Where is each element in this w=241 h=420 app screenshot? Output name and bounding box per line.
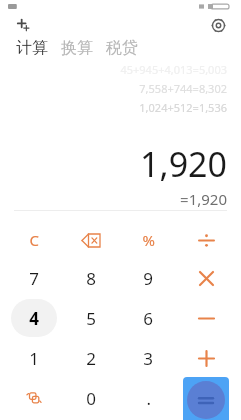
staticText: 5 bbox=[86, 307, 96, 330]
staticText: 计算 bbox=[16, 38, 48, 58]
button[interactable]: Plus bbox=[183, 339, 229, 377]
button[interactable]: 6 bbox=[125, 299, 171, 337]
staticText: 1,920 bbox=[140, 141, 227, 187]
staticText: 9 bbox=[143, 267, 153, 290]
staticText: 7,558+744=8,302 bbox=[139, 81, 227, 96]
button[interactable]: Percent bbox=[125, 221, 171, 259]
staticText: 1,024+512=1,536 bbox=[139, 100, 227, 115]
button[interactable]: 4 bbox=[11, 299, 57, 337]
button[interactable]: Clear bbox=[11, 221, 57, 259]
button[interactable]: Equals bbox=[183, 377, 229, 420]
button[interactable]: Settings bbox=[205, 12, 231, 38]
staticText: 0 bbox=[86, 387, 96, 410]
button[interactable]: . bbox=[125, 379, 171, 417]
staticText: =1,920 bbox=[180, 189, 227, 209]
staticText: 4 bbox=[29, 307, 39, 330]
staticText: 6 bbox=[143, 307, 153, 330]
button[interactable]: Backspace bbox=[68, 221, 114, 259]
staticText: 3 bbox=[143, 347, 153, 370]
staticText: 税贷 bbox=[106, 38, 138, 58]
button[interactable]: 换算 bbox=[59, 36, 95, 60]
button[interactable]: 税贷 bbox=[104, 36, 140, 60]
button[interactable]: 0 bbox=[68, 379, 114, 417]
button[interactable]: 7 bbox=[11, 259, 57, 297]
button[interactable]: Convert bbox=[11, 379, 57, 417]
staticText: 1 bbox=[29, 347, 39, 370]
staticText: 2 bbox=[86, 347, 96, 370]
button[interactable]: 1 bbox=[11, 339, 57, 377]
staticText: 换算 bbox=[61, 38, 93, 58]
button[interactable]: AI assist bbox=[10, 12, 36, 38]
button[interactable]: 计算 bbox=[14, 36, 50, 60]
button[interactable]: 3 bbox=[125, 339, 171, 377]
staticText: C bbox=[29, 230, 39, 250]
staticText: % bbox=[142, 230, 155, 250]
staticText: 7 bbox=[29, 267, 39, 290]
button[interactable]: 2 bbox=[68, 339, 114, 377]
staticText: . bbox=[146, 387, 151, 410]
staticText: 45+945+4,013=5,003 bbox=[120, 62, 227, 77]
button[interactable]: Minus bbox=[183, 299, 229, 337]
staticText: 8 bbox=[86, 267, 96, 290]
button[interactable]: Divide bbox=[183, 221, 229, 259]
button[interactable]: 8 bbox=[68, 259, 114, 297]
button[interactable]: 9 bbox=[125, 259, 171, 297]
button[interactable]: Multiply bbox=[183, 259, 229, 297]
button[interactable]: 5 bbox=[68, 299, 114, 337]
